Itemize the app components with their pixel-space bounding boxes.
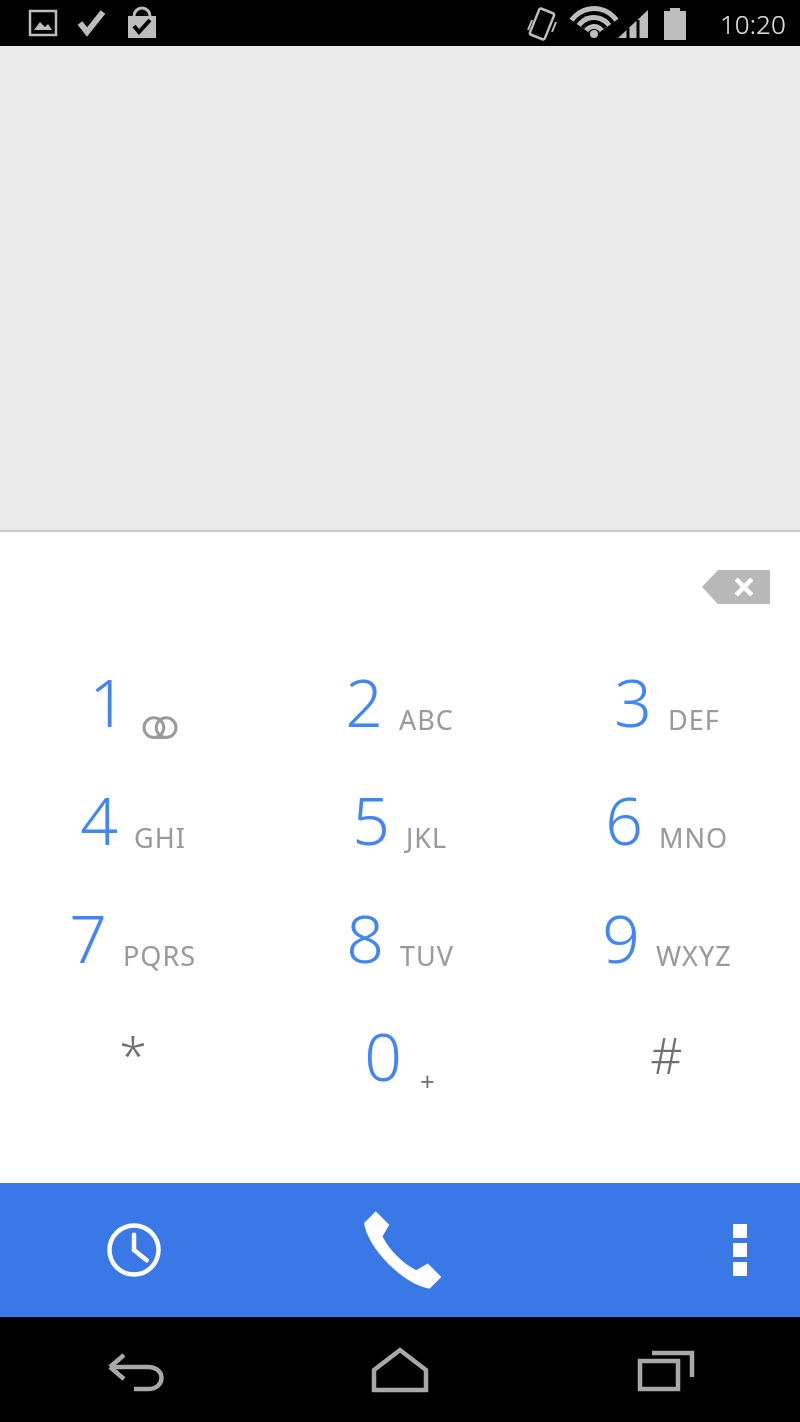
staticText: ABC [399, 701, 454, 738]
staticText: JKL [406, 819, 448, 856]
staticText: WXYZ [656, 937, 732, 974]
staticText: 1 [89, 656, 127, 746]
staticText: DEF [668, 701, 720, 738]
staticText: 6 [605, 774, 643, 864]
staticText: 10:20 [720, 6, 786, 41]
button[interactable]: 4 [0, 760, 266, 878]
staticText: 0 [364, 1010, 402, 1100]
button[interactable]: More options [680, 1183, 800, 1317]
staticText: 4 [80, 774, 118, 864]
button[interactable]: # [533, 996, 800, 1114]
button[interactable]: Back [0, 1317, 266, 1422]
staticText: 9 [602, 892, 640, 982]
button[interactable]: 7 [0, 878, 266, 996]
staticText: 2 [345, 656, 383, 746]
staticText: * [119, 1021, 147, 1089]
staticText: 3 [614, 656, 652, 746]
button[interactable]: 1 [0, 642, 266, 760]
staticText: PQRS [123, 937, 197, 974]
staticText: 7 [69, 892, 107, 982]
staticText: 5 [352, 774, 390, 864]
staticText: MNO [659, 819, 729, 856]
button[interactable]: 5 [266, 760, 533, 878]
button[interactable]: 2 [266, 642, 533, 760]
button[interactable]: Call history [0, 1183, 267, 1317]
button[interactable]: Backspace [690, 551, 782, 623]
button[interactable]: Recent apps [533, 1317, 800, 1422]
button[interactable]: 6 [533, 760, 800, 878]
staticText: GHI [134, 819, 186, 856]
button[interactable]: 3 [533, 642, 800, 760]
staticText: 8 [346, 892, 384, 982]
button[interactable]: 8 [266, 878, 533, 996]
button[interactable]: Call [267, 1183, 534, 1317]
button[interactable]: * [0, 996, 266, 1114]
staticText: + [420, 1063, 435, 1098]
staticText: TUV [400, 937, 454, 974]
staticText: # [650, 1021, 683, 1089]
button[interactable]: 9 [533, 878, 800, 996]
button[interactable]: 0 [266, 996, 533, 1114]
button[interactable]: Home [266, 1317, 533, 1422]
